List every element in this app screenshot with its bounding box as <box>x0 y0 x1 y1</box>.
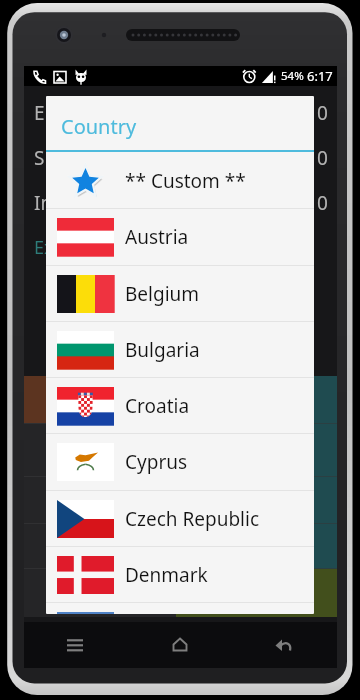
button[interactable]: ** Custom ** <box>46 153 314 209</box>
button[interactable]: Back <box>261 622 307 668</box>
staticText: Czech Republic <box>125 506 260 532</box>
button[interactable]: Cyprus <box>46 434 314 490</box>
button[interactable]: Home <box>157 622 203 668</box>
staticText: Bulgaria <box>125 337 200 363</box>
button[interactable]: Recent apps <box>52 622 98 668</box>
staticText: ** Custom ** <box>125 168 246 194</box>
staticText: Belgium <box>125 281 200 307</box>
staticText: Export <box>34 235 90 260</box>
staticText: Austria <box>125 224 189 250</box>
staticText: Energy <box>34 100 97 126</box>
button[interactable]: Croatia <box>46 378 314 434</box>
staticText: 54% <box>281 68 304 84</box>
staticText: 0 <box>317 190 328 216</box>
staticText: Country <box>61 113 137 140</box>
staticText: 0 <box>317 145 328 171</box>
staticText: Size <box>34 145 69 171</box>
button[interactable]: Belgium <box>46 266 314 322</box>
button[interactable]: Bulgaria <box>46 322 314 378</box>
staticText: 6:17 <box>307 67 333 85</box>
button[interactable]: Czech Republic <box>46 491 314 547</box>
staticText: 0 <box>317 100 328 126</box>
button[interactable]: Austria <box>46 209 314 265</box>
staticText: 2 <box>95 387 106 412</box>
staticText: Internal <box>34 190 105 216</box>
staticText: Cyprus <box>125 449 188 475</box>
button[interactable]: Estonia <box>46 603 314 614</box>
staticText: Denmark <box>125 562 208 588</box>
staticText: Croatia <box>125 393 190 419</box>
button[interactable]: Denmark <box>46 547 314 603</box>
